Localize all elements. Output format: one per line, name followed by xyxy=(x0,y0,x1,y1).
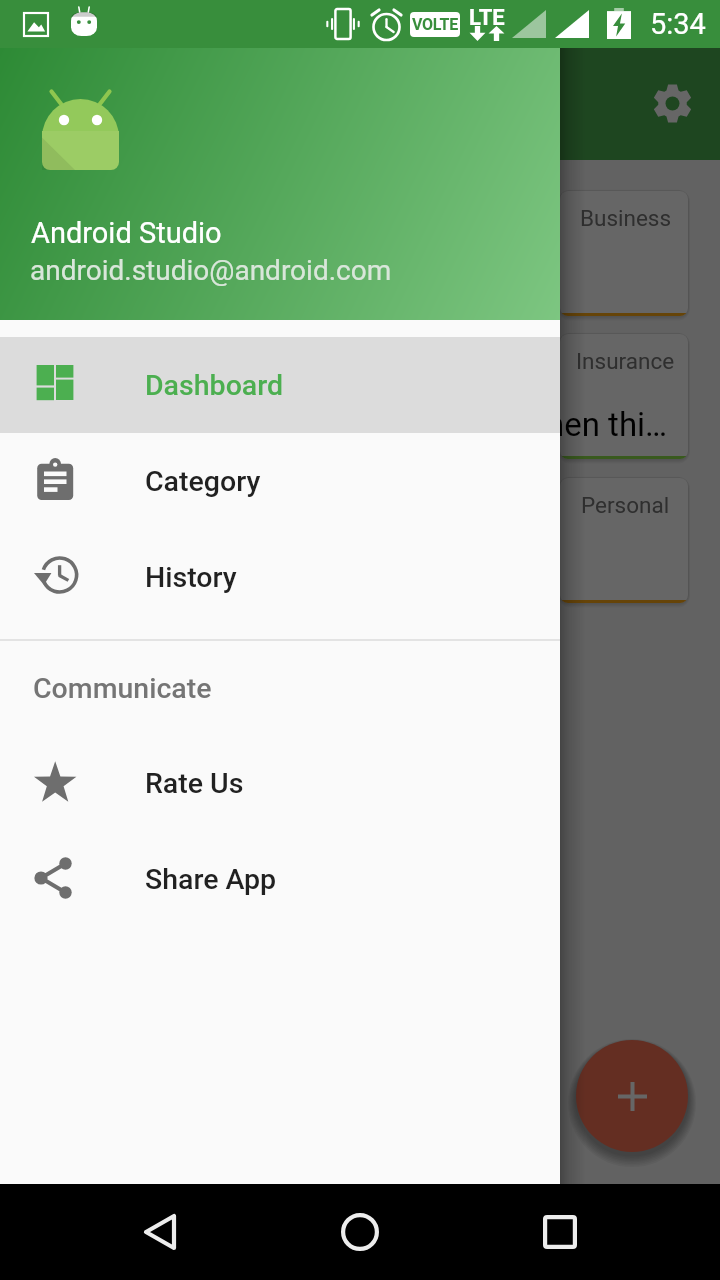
button[interactable]: Home xyxy=(316,1184,404,1280)
button[interactable]: Bills xyxy=(119,478,247,603)
button[interactable]: Health xyxy=(266,334,394,459)
button[interactable]: Share App xyxy=(0,831,560,927)
button[interactable]: Recents xyxy=(516,1184,604,1280)
button[interactable]: Health xyxy=(266,191,394,316)
staticText: Rate Us xyxy=(145,767,244,800)
button[interactable]: Settings xyxy=(631,63,713,145)
button[interactable]: Category xyxy=(0,433,560,529)
staticText: Dashboard xyxy=(145,369,284,402)
staticText: LTE xyxy=(469,5,505,31)
button[interactable]: Business xyxy=(560,191,688,316)
staticText: Android Studio xyxy=(31,216,222,250)
button[interactable]: Rate Us xyxy=(0,735,560,831)
button[interactable]: Dashboard xyxy=(0,337,560,433)
staticText: 5:34 xyxy=(650,7,706,41)
staticText: History xyxy=(145,561,237,594)
button[interactable]: Personal xyxy=(560,478,688,603)
button[interactable]: Back xyxy=(116,1184,204,1280)
button[interactable]: Travel xyxy=(413,334,541,459)
staticText: hen thi… xyxy=(546,405,668,444)
staticText: VOLTE xyxy=(412,15,458,34)
staticText: Share App xyxy=(145,863,277,896)
button[interactable]: Bills xyxy=(119,334,247,459)
button[interactable]: Travel xyxy=(413,191,541,316)
staticText: Communicate xyxy=(33,672,212,705)
staticText: android.studio@android.com xyxy=(30,254,392,287)
button[interactable]: Add xyxy=(576,1040,688,1152)
staticText: Business xyxy=(580,205,672,231)
button[interactable]: Insurance xyxy=(560,334,688,459)
button[interactable]: History xyxy=(0,529,560,625)
staticText: Personal xyxy=(581,492,670,518)
button[interactable]: Bills xyxy=(119,191,247,316)
staticText: Category xyxy=(145,465,261,498)
staticText: Insurance xyxy=(576,348,675,374)
staticText: Bills xyxy=(163,205,206,231)
